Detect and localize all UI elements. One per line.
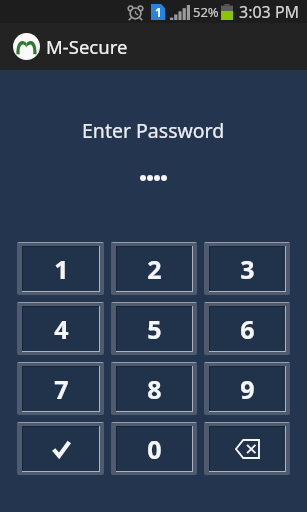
button[interactable]: 0 [111,422,197,475]
button[interactable]: 6 [204,302,290,355]
staticText: 7 [54,372,69,406]
staticText: 1 [54,252,69,286]
button[interactable]: 7 [17,362,104,415]
button[interactable]: 4 [17,302,104,355]
staticText: 52% [193,3,219,21]
staticText: 8 [147,372,162,406]
button[interactable]: Backspace [204,422,290,475]
staticText: 1 [155,4,162,20]
staticText: 9 [240,372,255,406]
staticText: 3 [240,252,255,286]
staticText: 5 [147,312,162,346]
staticText: 6 [240,312,255,346]
staticText: 0 [147,432,162,466]
button[interactable]: 3 [204,242,290,295]
button[interactable]: Confirm [17,422,104,475]
staticText: Enter Password [82,117,225,144]
button[interactable]: 5 [111,302,197,355]
button[interactable]: 1 [17,242,104,295]
staticText: 2 [147,252,162,286]
staticText: M-Secure [46,34,128,59]
button[interactable]: 2 [111,242,197,295]
staticText: 4 [54,312,69,346]
button[interactable]: 9 [204,362,290,415]
button[interactable]: 8 [111,362,197,415]
staticText: 3:03 PM [239,1,300,23]
button[interactable]: M-Secure [0,23,307,70]
